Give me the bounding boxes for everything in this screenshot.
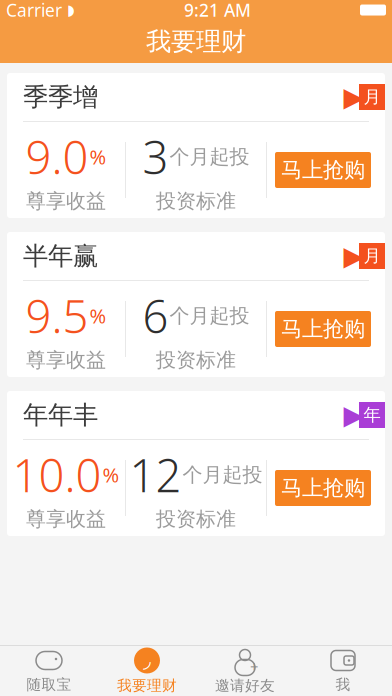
staticText: 个月起投 — [169, 303, 249, 328]
button[interactable]: 马上抢购 — [275, 470, 371, 506]
staticText: % — [89, 302, 106, 329]
staticText: 9.0 — [25, 127, 88, 187]
staticText: 随取宝 — [26, 675, 71, 693]
staticText: 投资标准 — [156, 189, 236, 213]
staticText: ▶ — [343, 400, 364, 430]
staticText: 6 — [142, 286, 168, 346]
button[interactable]: 马上抢购 — [275, 152, 371, 188]
staticText: % — [89, 143, 106, 170]
staticText: 尊享收益 — [26, 348, 106, 372]
button[interactable]: + — [196, 646, 294, 696]
staticText: 我要理财 — [146, 26, 246, 57]
staticText: 月 — [363, 86, 380, 108]
staticText: 9.5 — [25, 286, 88, 346]
staticText: 个月起投 — [182, 462, 262, 487]
button[interactable]: ◞ — [98, 646, 196, 696]
staticText: ▶ — [343, 241, 364, 271]
staticText: 10.0 — [12, 445, 101, 505]
staticText: 我 — [335, 675, 350, 693]
staticText: 半年赢 — [23, 240, 98, 271]
staticText: 马上抢购 — [281, 316, 365, 342]
staticText: Carrier — [6, 0, 62, 21]
staticText: + — [250, 657, 258, 676]
staticText: 月 — [363, 245, 380, 267]
button[interactable]: 马上抢购 — [275, 311, 371, 347]
staticText: ▶ — [343, 82, 364, 112]
staticText: 年年丰 — [23, 399, 98, 430]
staticText: 马上抢购 — [281, 157, 365, 183]
staticText: 投资标准 — [156, 507, 236, 531]
staticText: 尊享收益 — [26, 189, 106, 213]
staticText: 投资标准 — [156, 348, 236, 372]
staticText: 3 — [142, 127, 168, 187]
staticText: 邀请好友 — [215, 676, 275, 694]
staticText: 个月起投 — [169, 144, 249, 169]
staticText: % — [102, 461, 119, 488]
staticText: ◞ — [143, 649, 151, 672]
staticText: 12 — [129, 445, 181, 505]
staticText: 年 — [363, 404, 380, 426]
staticText: 我要理财 — [117, 676, 177, 694]
button[interactable]: 随取宝 — [0, 646, 98, 696]
staticText: 9:21 AM — [184, 0, 251, 21]
button[interactable]: 我 — [294, 646, 392, 696]
staticText: ◗ — [67, 2, 75, 18]
staticText: 马上抢购 — [281, 475, 365, 501]
staticText: 尊享收益 — [26, 507, 106, 531]
staticText: 季季增 — [23, 81, 98, 112]
